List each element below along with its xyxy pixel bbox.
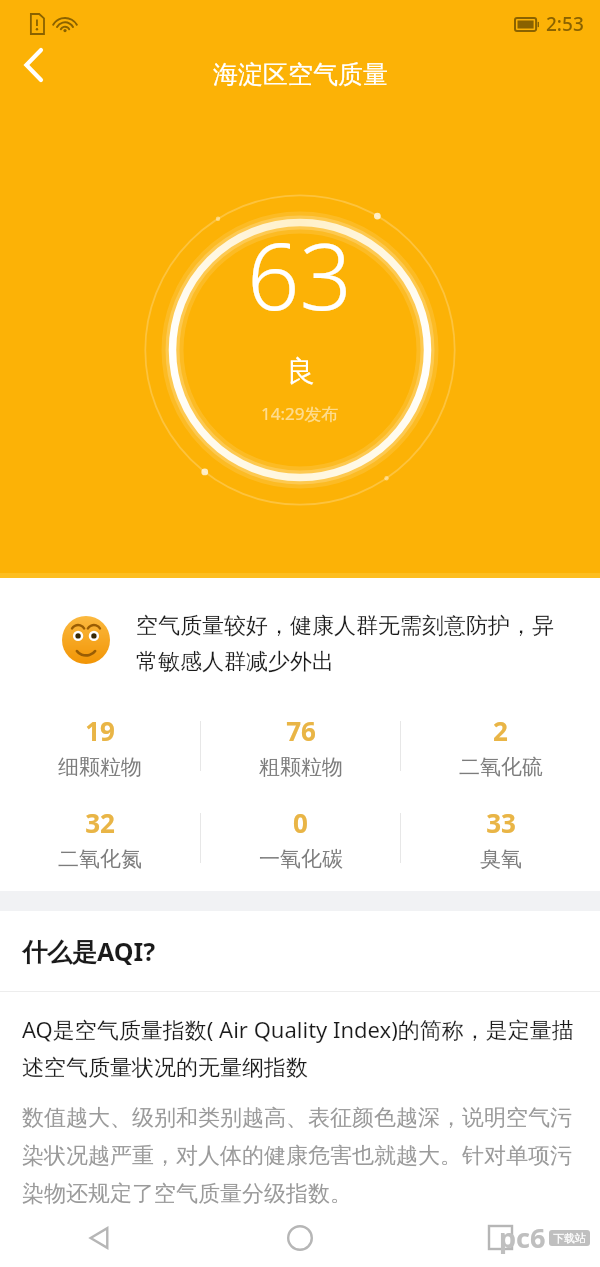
staticText: 33	[486, 805, 516, 840]
staticText: 细颗粒物	[58, 754, 142, 780]
staticText: 0	[293, 805, 308, 840]
button[interactable]: Home	[200, 1208, 400, 1267]
staticText: 2:53	[546, 11, 584, 37]
button[interactable]: 76	[201, 713, 400, 780]
button[interactable]: Back	[0, 1208, 200, 1267]
button[interactable]: Back	[8, 39, 60, 91]
staticText: pc6	[499, 1219, 546, 1256]
staticText: 二氧化氮	[58, 846, 142, 872]
staticText: 良	[286, 353, 315, 390]
button[interactable]: 0	[201, 805, 400, 872]
staticText: 19	[85, 713, 115, 748]
staticText: 76	[286, 713, 316, 748]
staticText: AQ是空气质量指数( Air Quality Index)的简称，是定量描述空气…	[22, 1014, 578, 1082]
button[interactable]: Recent apps	[400, 1208, 600, 1267]
staticText: 海淀区空气质量	[213, 59, 388, 90]
staticText: 32	[85, 805, 115, 840]
staticText: 二氧化硫	[459, 754, 543, 780]
button[interactable]: 2	[401, 713, 600, 780]
staticText: 什么是AQI?	[22, 934, 156, 968]
button[interactable]: 33	[401, 805, 600, 872]
staticText: 下载站	[553, 1231, 586, 1245]
staticText: 一氧化碳	[259, 846, 343, 872]
staticText: 空气质量较好，健康人群无需刻意防护，异常敏感人群减少外出	[136, 612, 560, 675]
staticText: 2	[493, 713, 508, 748]
staticText: 臭氧	[480, 846, 522, 872]
button[interactable]: 什么是AQI?	[0, 911, 600, 991]
staticText: 粗颗粒物	[259, 754, 343, 780]
staticText: 63	[247, 212, 353, 337]
staticText: 数值越大、级别和类别越高、表征颜色越深，说明空气污染状况越严重，对人体的健康危害…	[22, 1104, 578, 1208]
staticText: 14:29发布	[261, 402, 339, 425]
button[interactable]: 32	[0, 805, 200, 872]
button[interactable]: 19	[0, 713, 200, 780]
